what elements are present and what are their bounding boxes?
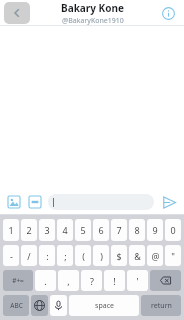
staticText: $ — [116, 250, 122, 262]
button[interactable]: & — [129, 245, 145, 266]
button[interactable]: ? — [81, 270, 102, 291]
staticText: 0 — [170, 224, 176, 236]
staticText: ( — [82, 250, 85, 262]
staticText: 2 — [26, 224, 32, 236]
button[interactable]: #+= — [3, 270, 33, 291]
button[interactable]: ) — [93, 245, 109, 266]
staticText: - — [10, 250, 13, 262]
staticText: #+= — [12, 276, 24, 285]
staticText: ? — [90, 275, 94, 287]
other: Voice input — [53, 300, 64, 311]
button[interactable]: : — [39, 245, 55, 266]
button[interactable]: 2 — [21, 219, 37, 241]
staticText: ! — [113, 275, 116, 287]
staticText: ABC — [10, 301, 23, 310]
staticText: ) — [100, 250, 103, 262]
button[interactable]: Send — [159, 192, 179, 212]
staticText: Bakary Kone — [61, 1, 124, 15]
button[interactable]: 4 — [57, 219, 73, 241]
button[interactable] — [48, 194, 154, 210]
button[interactable]: Add GIF — [26, 193, 44, 211]
staticText: / — [27, 250, 31, 262]
button[interactable]: Add photo — [5, 193, 23, 211]
staticText: ; — [64, 250, 67, 262]
staticText: . — [44, 275, 47, 287]
button[interactable]: ( — [75, 245, 91, 266]
button[interactable]: 1 — [3, 219, 19, 241]
staticText: 3 — [44, 224, 50, 236]
button[interactable]: ABC — [3, 295, 29, 316]
staticText: 7 — [116, 224, 122, 236]
staticText: 8 — [134, 224, 140, 236]
button[interactable]: ! — [104, 270, 125, 291]
staticText: & — [134, 250, 141, 262]
button[interactable]: 8 — [129, 219, 145, 241]
staticText: ' — [136, 275, 139, 287]
staticText: 5 — [80, 224, 86, 236]
other: Change keyboard — [34, 300, 45, 311]
button[interactable]: $ — [111, 245, 127, 266]
other: Delete — [160, 275, 171, 286]
button[interactable]: 6 — [93, 219, 109, 241]
button[interactable]: , — [58, 270, 79, 291]
staticText: 6 — [98, 224, 104, 236]
staticText: , — [67, 275, 70, 287]
staticText: space — [95, 301, 114, 311]
button[interactable]: @ — [147, 245, 163, 266]
button[interactable]: return — [141, 295, 181, 316]
button[interactable]: - — [3, 245, 19, 266]
button[interactable]: Back — [4, 2, 30, 24]
staticText: 1 — [8, 224, 14, 236]
button[interactable]: ; — [57, 245, 73, 266]
staticText: @ — [151, 250, 160, 262]
staticText: 4 — [62, 224, 68, 236]
button[interactable]: 3 — [39, 219, 55, 241]
button[interactable]: space — [69, 295, 139, 316]
button[interactable]: Voice input — [50, 295, 67, 316]
button[interactable]: 7 — [111, 219, 127, 241]
button[interactable]: Change keyboard — [31, 295, 48, 316]
staticText: return — [151, 301, 172, 311]
button[interactable]: / — [21, 245, 37, 266]
button[interactable]: 5 — [75, 219, 91, 241]
button[interactable]: 9 — [147, 219, 163, 241]
staticText: " — [171, 250, 175, 262]
staticText: 9 — [152, 224, 158, 236]
staticText: : — [46, 250, 49, 262]
button[interactable]: Conversation info — [158, 3, 178, 23]
staticText: @BakaryKone1910 — [62, 16, 124, 26]
button[interactable]: " — [165, 245, 181, 266]
button[interactable]: ' — [127, 270, 148, 291]
button[interactable]: 0 — [165, 219, 181, 241]
button[interactable]: . — [35, 270, 56, 291]
button[interactable]: Delete — [150, 270, 181, 291]
